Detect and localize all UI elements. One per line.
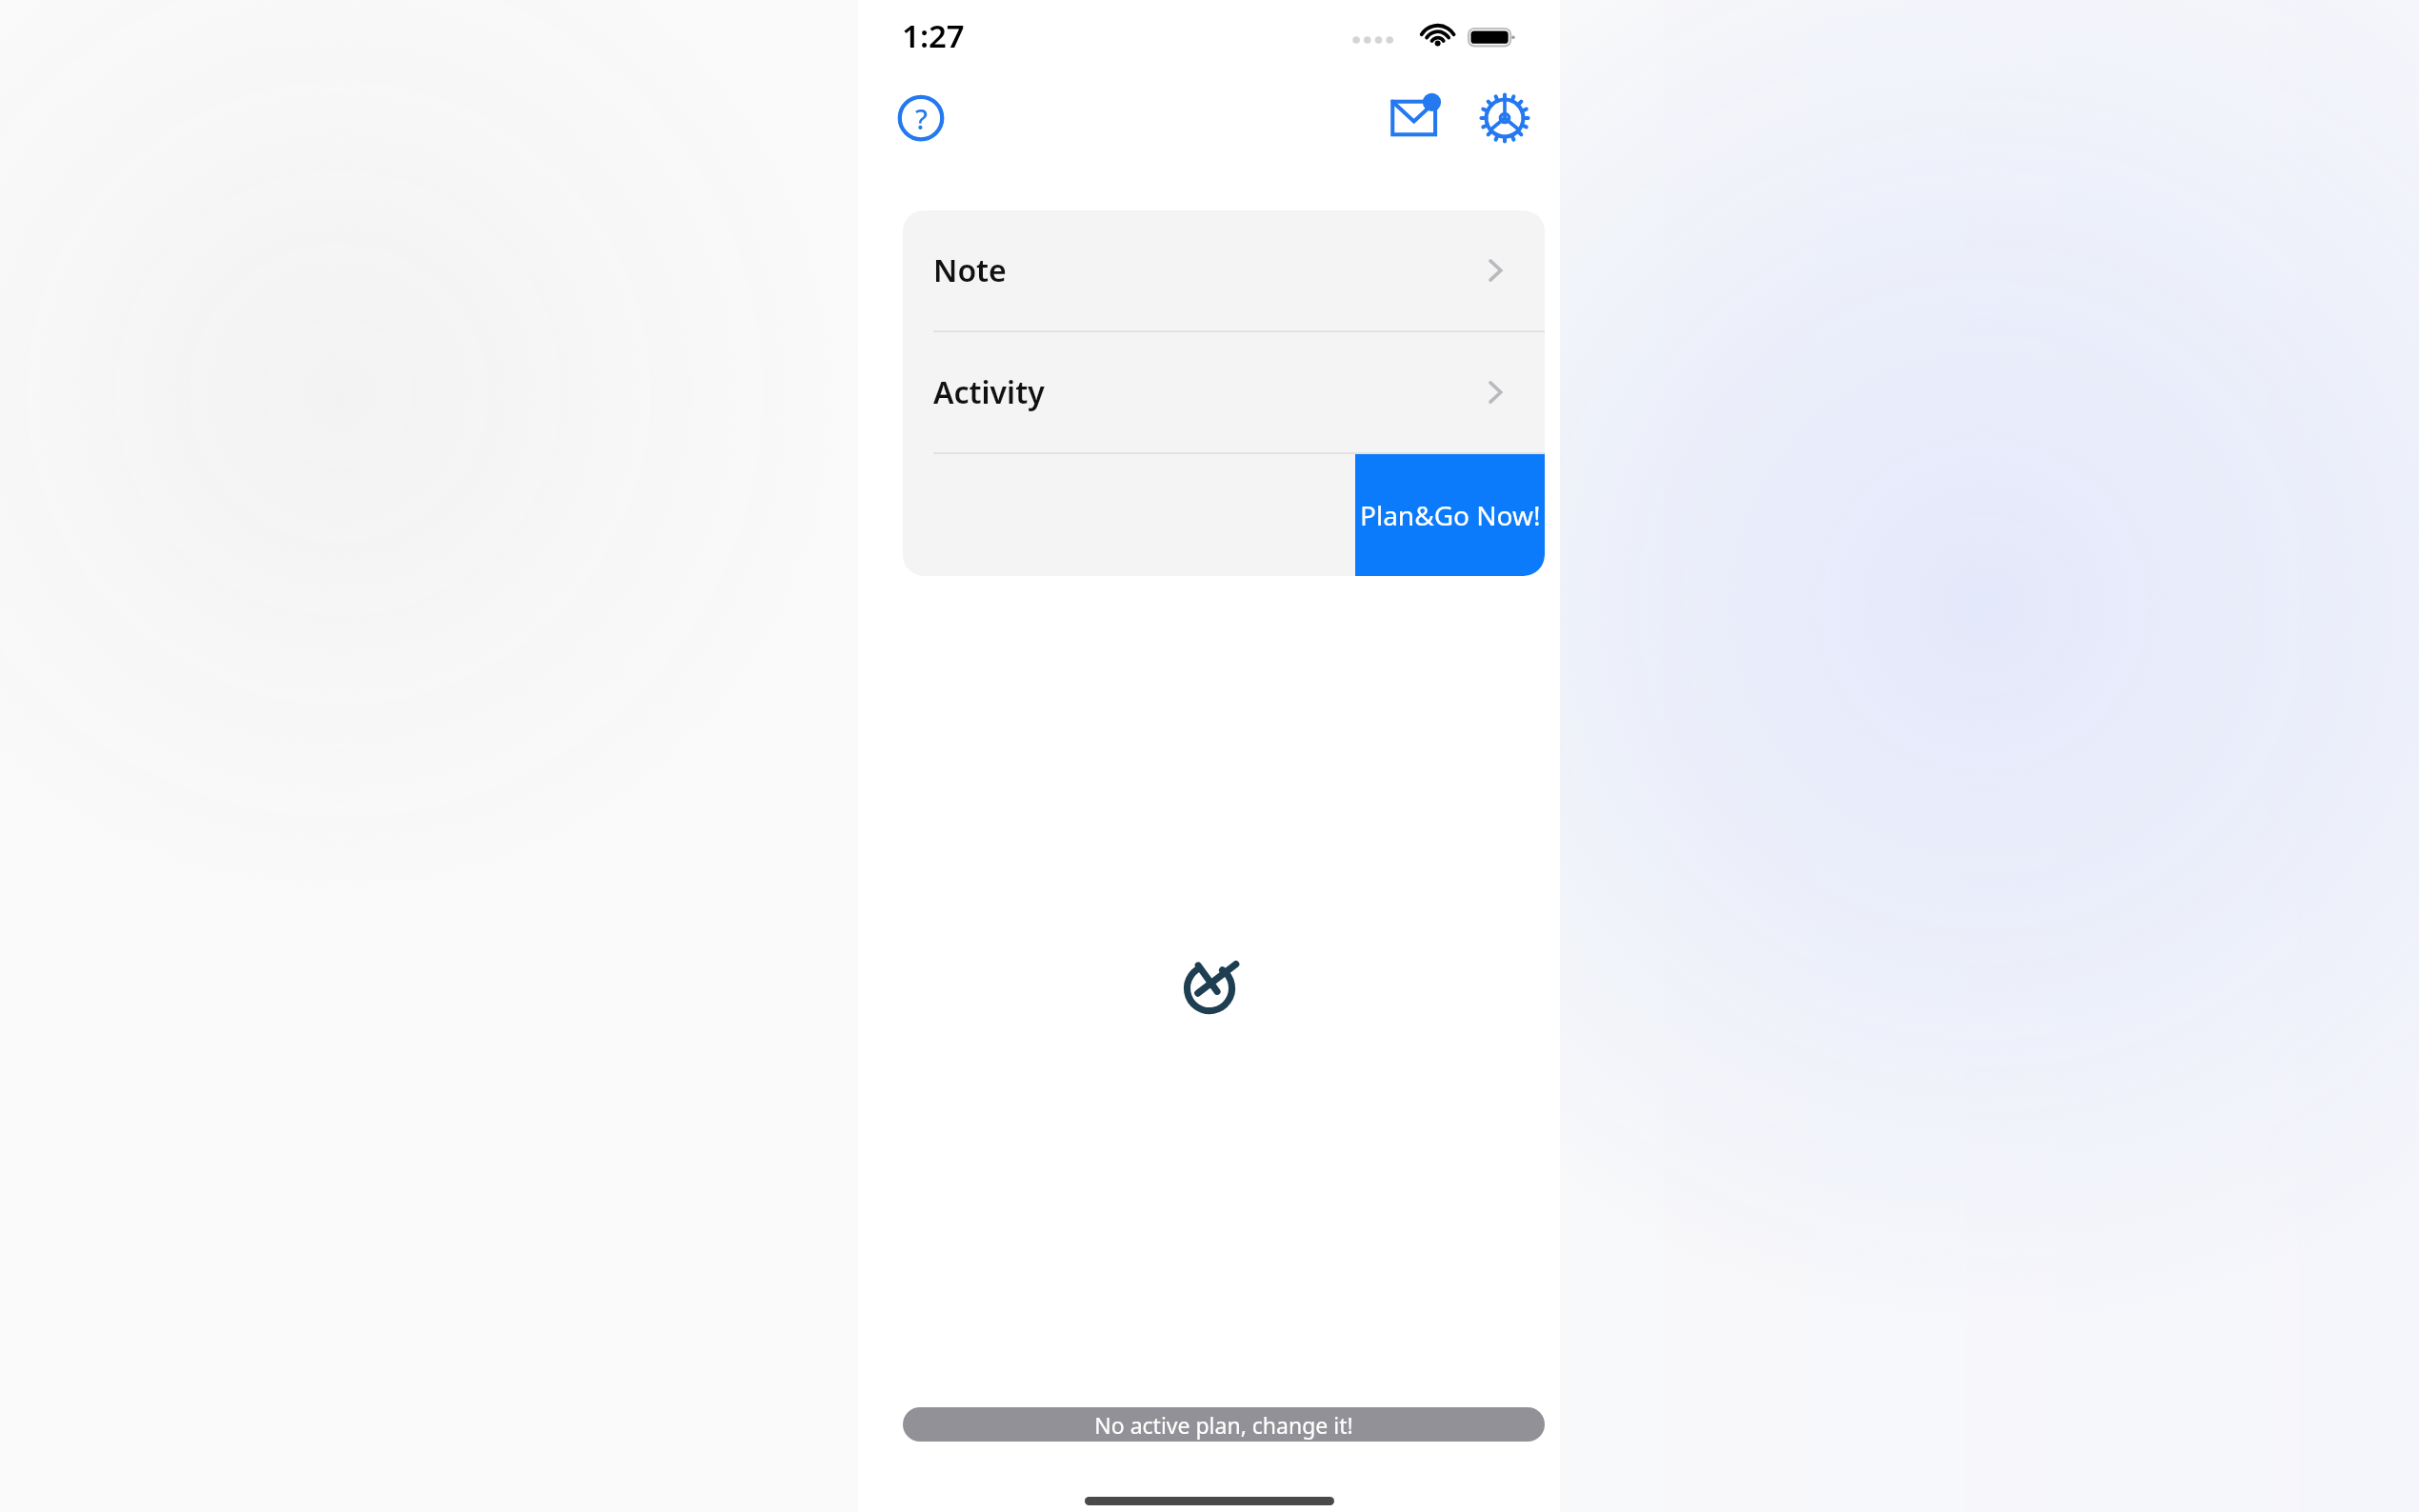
button[interactable]: Note bbox=[903, 210, 1545, 330]
button[interactable]: Settings bbox=[1470, 84, 1539, 152]
staticText: Plan&Go Now! bbox=[1360, 497, 1541, 533]
staticText: No active plan, change it! bbox=[1094, 1410, 1353, 1440]
staticText: 1:27 bbox=[902, 14, 965, 57]
button[interactable]: Activity bbox=[903, 332, 1545, 452]
button[interactable]: Plan&Go Now! bbox=[1355, 454, 1545, 576]
button[interactable]: Messages bbox=[1383, 84, 1451, 152]
button[interactable] bbox=[903, 454, 1545, 576]
button[interactable]: Help bbox=[887, 84, 955, 152]
staticText: Activity bbox=[933, 371, 1045, 413]
staticText: ? bbox=[915, 100, 928, 137]
staticText: Note bbox=[933, 249, 1007, 291]
button[interactable]: No active plan, change it! bbox=[903, 1407, 1545, 1442]
